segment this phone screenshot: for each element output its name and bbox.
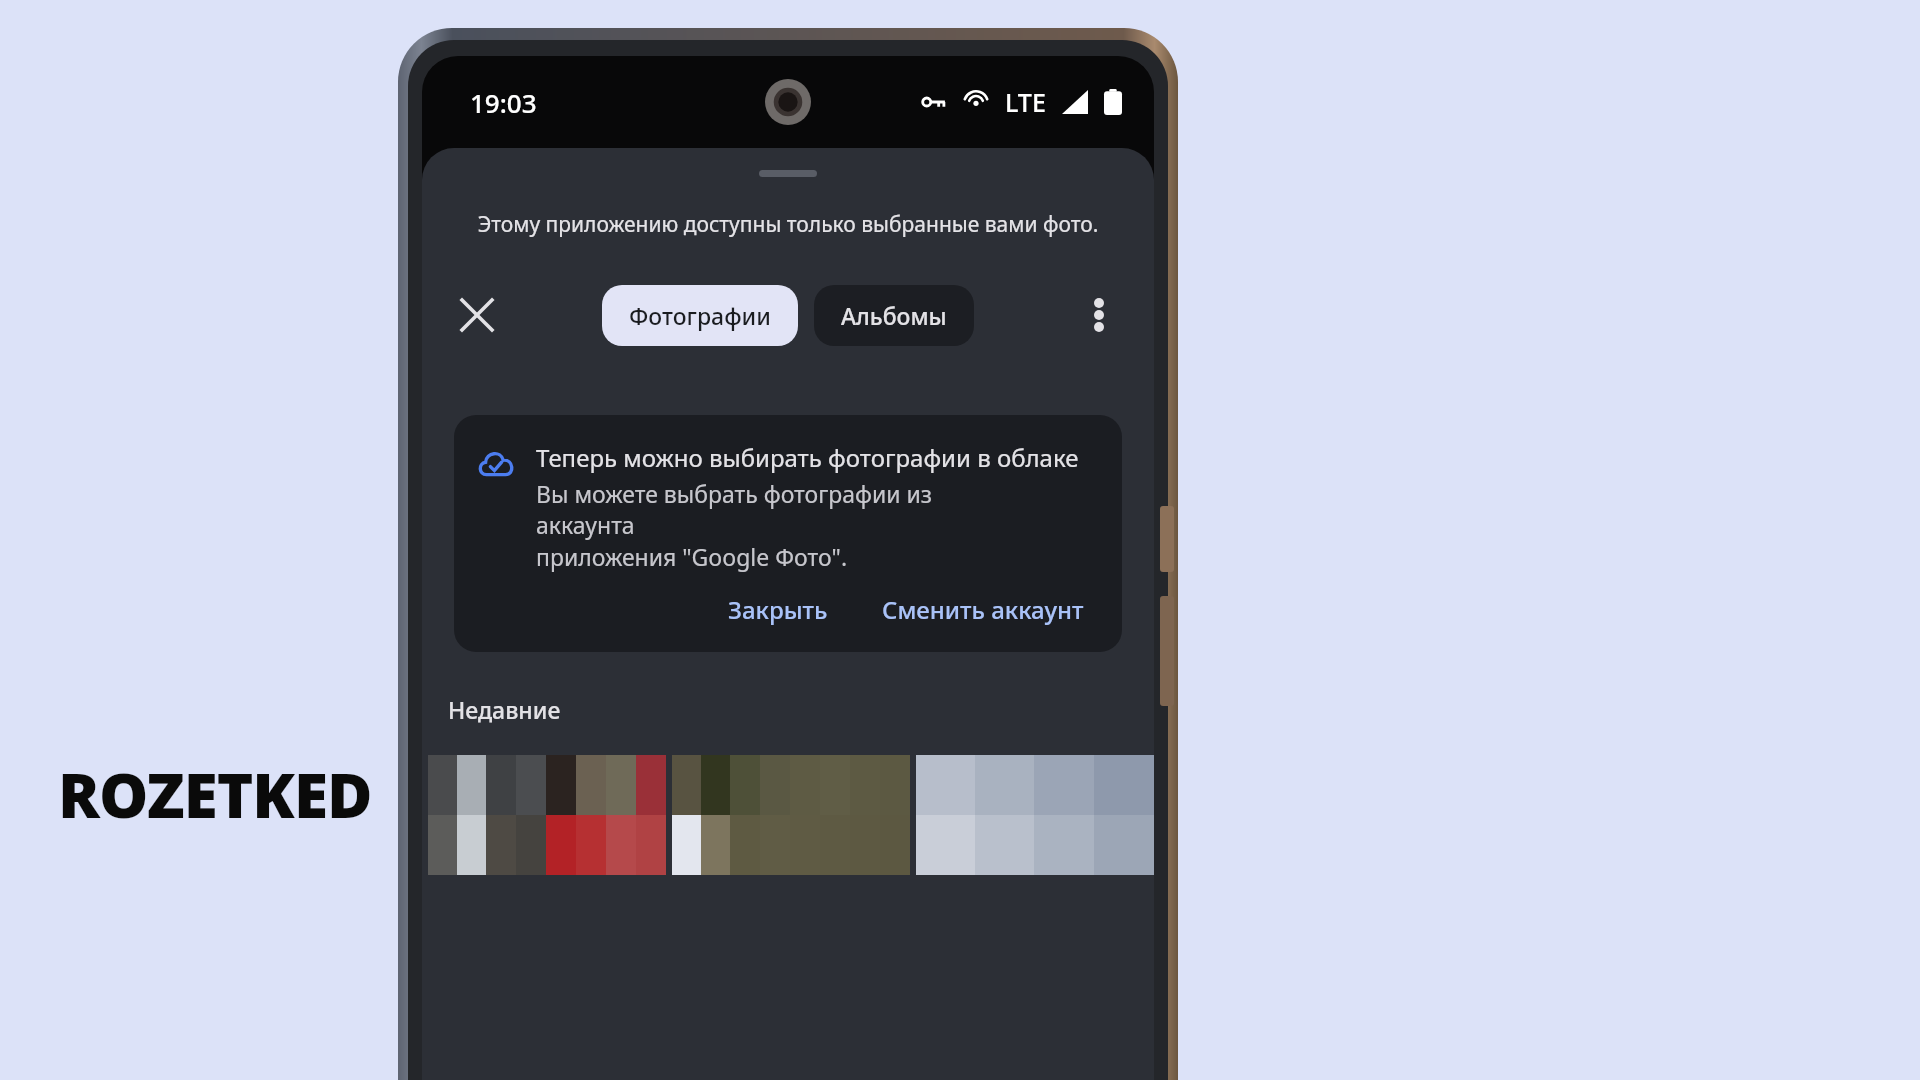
staticText: Вы можете выбрать фотографии из аккаунта… [536, 478, 933, 573]
staticText: Сменить аккаунт [882, 593, 1084, 626]
button[interactable]: Сменить аккаунт [866, 581, 1100, 638]
button[interactable]: Закрыть [448, 286, 506, 344]
button[interactable]: Теперь можно выбирать фотографии в облак… [454, 415, 1122, 652]
button[interactable]: Альбомы [814, 285, 974, 346]
staticText: Теперь можно выбирать фотографии в облак… [536, 441, 1079, 474]
button[interactable]: Закрыть [712, 581, 844, 638]
staticText: Закрыть [728, 593, 828, 626]
staticText: Альбомы [841, 300, 947, 331]
button[interactable]: Фотографии [602, 285, 798, 346]
button[interactable]: Ещё [1070, 286, 1128, 344]
staticText: ROZETKED [58, 752, 372, 836]
staticText: LTE [1005, 85, 1046, 119]
staticText: Этому приложению доступны только выбранн… [442, 210, 1134, 239]
button[interactable] [672, 755, 910, 875]
staticText: Фотографии [629, 300, 771, 331]
staticText: Недавние [448, 694, 561, 725]
button[interactable] [916, 755, 1154, 875]
staticText: 19:03 [470, 85, 537, 120]
button[interactable] [428, 755, 666, 875]
